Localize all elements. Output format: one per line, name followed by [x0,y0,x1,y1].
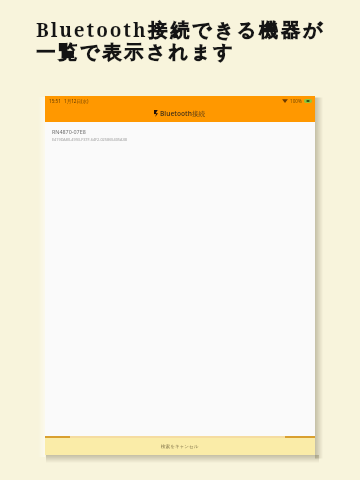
staticText: 検索をキャンセル [161,444,199,450]
button[interactable]: RN4870-07E8 [45,122,315,147]
staticText: RN4870-07E8 [52,128,86,135]
staticText: 一覧で表示されます [36,41,236,65]
button[interactable]: 検索をキャンセル [45,436,315,455]
other: Wi-Fi [282,98,288,103]
staticText: Bluetooth接続 [160,109,206,118]
staticText: 100% [290,98,302,104]
staticText: 15:51 [49,98,61,104]
staticText: E419DA80-4993-F37F-64F2-025865405A3B [52,137,128,142]
staticText: 接続できる機器が [148,19,325,43]
other: Battery 100% [304,99,312,103]
staticText: Bluetooth [36,17,148,43]
staticText: 1月12日(水) [64,98,89,104]
